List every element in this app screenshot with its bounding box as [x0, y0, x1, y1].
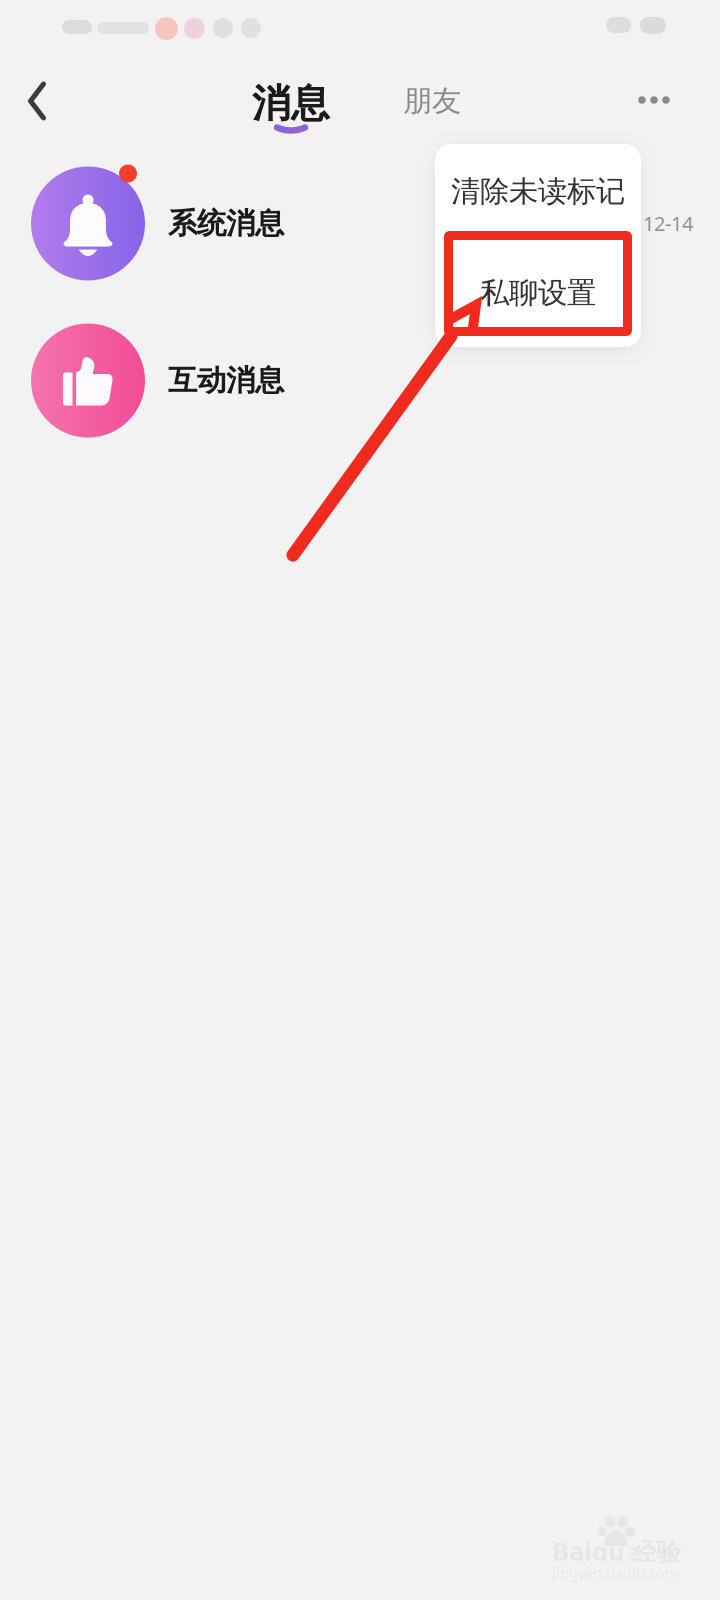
staticText: 私聊设置	[480, 275, 596, 311]
button[interactable]: 清除未读标记	[435, 144, 641, 239]
staticText: 清除未读标记	[451, 173, 625, 209]
staticText: Baidu 经验	[552, 1534, 681, 1568]
button[interactable]: 消息	[240, 72, 342, 144]
staticText: 12-14	[643, 210, 693, 237]
button[interactable]: 系统消息	[0, 145, 720, 302]
staticText: 朋友	[403, 83, 461, 119]
staticText: jingyan.baidu.com	[552, 1563, 679, 1582]
button[interactable]: 朋友	[389, 71, 475, 131]
staticText: 互动消息	[168, 362, 284, 398]
button[interactable]: 互动消息	[0, 302, 720, 459]
button[interactable]: 私聊设置	[435, 239, 641, 347]
staticText: 消息	[252, 80, 330, 127]
button[interactable]: More options	[622, 68, 686, 132]
staticText: 系统消息	[168, 205, 284, 241]
button[interactable]: Back	[5, 69, 69, 133]
